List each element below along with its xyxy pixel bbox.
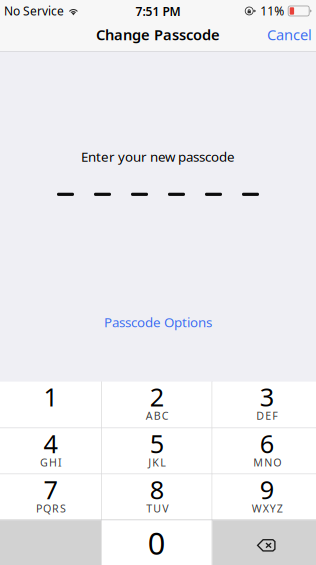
staticText: ABC (146, 409, 169, 423)
staticText: 8 (150, 472, 164, 506)
staticText: WXYZ (252, 501, 283, 515)
staticText: DEF (256, 409, 278, 423)
staticText: Enter your new passcode (81, 148, 235, 165)
staticText: 11% (260, 3, 284, 19)
staticText: 1 (43, 380, 57, 413)
staticText: 6 (260, 426, 274, 460)
button[interactable]: 8 (102, 474, 212, 520)
button[interactable]: Cancel (257, 18, 316, 51)
button[interactable]: 9 (212, 474, 316, 520)
button[interactable]: Passcode Options (92, 308, 224, 336)
staticText: GHI (40, 455, 62, 469)
staticText: 3 (260, 380, 274, 413)
staticText: 7 (43, 472, 57, 506)
button[interactable]: 4 (0, 428, 101, 474)
staticText: Passcode Options (104, 313, 212, 331)
staticText: 5 (150, 426, 164, 460)
staticText: JKL (148, 455, 166, 469)
staticText: TUV (146, 501, 168, 515)
staticText: 2 (150, 380, 164, 413)
staticText: Change Passcode (96, 25, 220, 44)
staticText: Cancel (267, 25, 312, 44)
button[interactable]: 2 (102, 382, 212, 428)
staticText: 4 (43, 426, 57, 460)
button[interactable]: 6 (212, 428, 316, 474)
button[interactable]: 7 (0, 474, 101, 520)
button[interactable]: 0 (102, 520, 212, 565)
button[interactable]: Delete (212, 520, 316, 565)
staticText: No Service (4, 3, 64, 19)
button[interactable]: 1 (0, 382, 101, 428)
staticText: 7:51 PM (135, 3, 180, 19)
staticText: 9 (260, 472, 274, 506)
staticText: 0 (148, 522, 166, 563)
staticText: MNO (253, 455, 281, 469)
button[interactable]: 5 (102, 428, 212, 474)
button[interactable]: 3 (212, 382, 316, 428)
staticText: PQRS (36, 501, 66, 515)
